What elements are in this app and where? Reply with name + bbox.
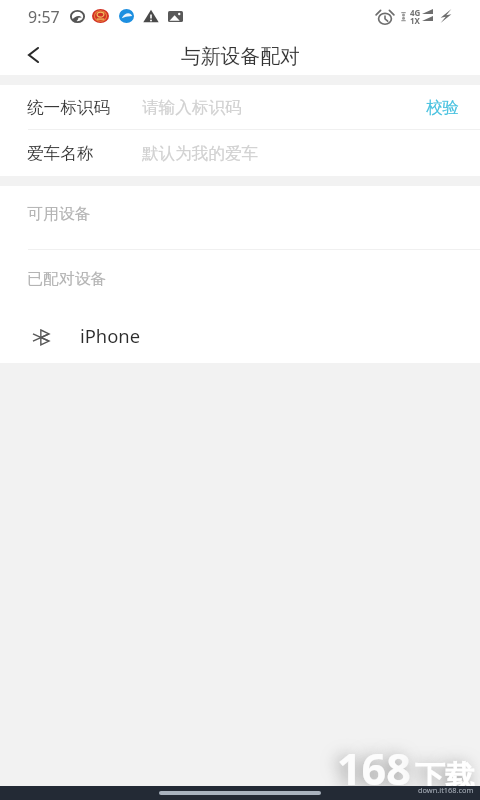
staticText: 统一标识码 [27, 97, 110, 118]
button[interactable]: iPhone [0, 312, 480, 363]
staticText: iPhone [80, 323, 141, 348]
staticText: down.it168.com [418, 785, 474, 795]
staticText: 默认为我的爱车 [142, 143, 259, 164]
staticText: 下载 [415, 758, 475, 796]
staticText: 校验 [426, 97, 460, 118]
button[interactable]: Back [0, 38, 56, 75]
staticText: 爱车名称 [27, 143, 94, 164]
staticText: 9:57 [28, 6, 60, 28]
staticText: 4G [410, 7, 421, 18]
staticText: 请输入标识码 [142, 97, 242, 118]
button[interactable]: 统一标识码 [0, 85, 480, 129]
staticText: 已配对设备 [27, 269, 107, 289]
button[interactable]: 校验 [414, 85, 480, 129]
button[interactable]: 爱车名称 [0, 130, 480, 176]
staticText: 1X [410, 15, 420, 26]
staticText: 与新设备配对 [181, 44, 300, 69]
staticText: 可用设备 [27, 204, 91, 224]
staticText: 168 [337, 739, 411, 798]
